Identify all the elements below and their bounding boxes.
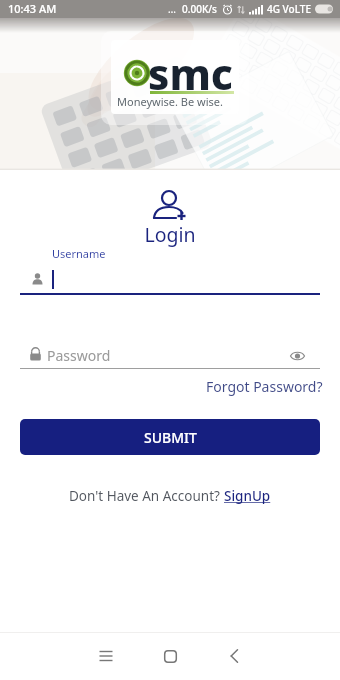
button[interactable]: SUBMIT (20, 419, 320, 455)
button[interactable] (74, 632, 138, 680)
staticText: Forgot Password? (206, 377, 323, 396)
button[interactable] (202, 632, 266, 680)
button[interactable]: SignUp (224, 487, 271, 505)
button[interactable] (289, 349, 306, 362)
staticText: 0.00K/s (182, 2, 217, 16)
staticText: … (168, 2, 176, 16)
staticText: Login (0, 221, 340, 248)
button[interactable]: Forgot Password? (150, 375, 330, 397)
staticText: Password (47, 346, 111, 365)
button[interactable] (20, 340, 280, 368)
staticText: Don't Have An Account? (69, 487, 224, 505)
staticText: 4G VoLTE (267, 2, 311, 16)
button[interactable] (20, 266, 320, 292)
staticText: smc (148, 45, 233, 102)
button[interactable] (138, 632, 202, 680)
staticText: Moneywise. Be wise. (0, 94, 340, 109)
staticText: SUBMIT (144, 428, 197, 447)
staticText: 10:43 AM (8, 1, 57, 16)
staticText: Username (52, 246, 106, 261)
